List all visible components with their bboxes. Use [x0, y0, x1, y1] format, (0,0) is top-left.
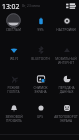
staticText: WI-FI [10, 57, 18, 61]
staticText: АВТОПОВОРОТ ЭКРАНА [54, 115, 78, 123]
staticText: СВЕТЛЫЙ [6, 28, 21, 32]
button[interactable]: BLUETOOTH [27, 41, 53, 70]
staticText: НАСТРОЙКИ [56, 28, 76, 32]
staticText: ПЕРЕДАЧА ДАННЫХ [58, 86, 75, 94]
button[interactable]: ПЕРЕДАЧА ДАННЫХ [53, 70, 79, 99]
staticText: 99% [37, 28, 44, 32]
staticText: BLUETOOTH [31, 57, 50, 61]
staticText: Вт, 23 июня [22, 4, 40, 8]
button[interactable]: WI-FI [0, 41, 27, 70]
staticText: СНИМОК ЭКРАНА [33, 86, 48, 94]
button[interactable]: 99% [27, 12, 53, 41]
staticText: МОБИЛЬНЫЙ ИНТЕРНЕТ [55, 57, 77, 65]
staticText: GPS [37, 115, 43, 119]
button[interactable]: РЕЖИМ ПОЛЁТА [0, 70, 27, 99]
button[interactable]: СВЕТЛЫЙ [0, 12, 27, 41]
button[interactable]: СНИМОК ЭКРАНА [27, 70, 53, 99]
button[interactable]: ЗВУКОВОЙ ПРОФИЛЬ [0, 99, 27, 128]
button[interactable]: АВТОПОВОРОТ ЭКРАНА [53, 99, 79, 128]
button[interactable]: НАСТРОЙКИ [53, 12, 79, 41]
button[interactable]: МОБИЛЬНЫЙ ИНТЕРНЕТ [53, 41, 79, 70]
staticText: ЗВУКОВОЙ ПРОФИЛЬ [5, 115, 23, 123]
staticText: РЕЖИМ ПОЛЁТА [7, 86, 20, 94]
staticText: 13:02 [2, 2, 20, 11]
button[interactable]: GPS [27, 99, 53, 128]
